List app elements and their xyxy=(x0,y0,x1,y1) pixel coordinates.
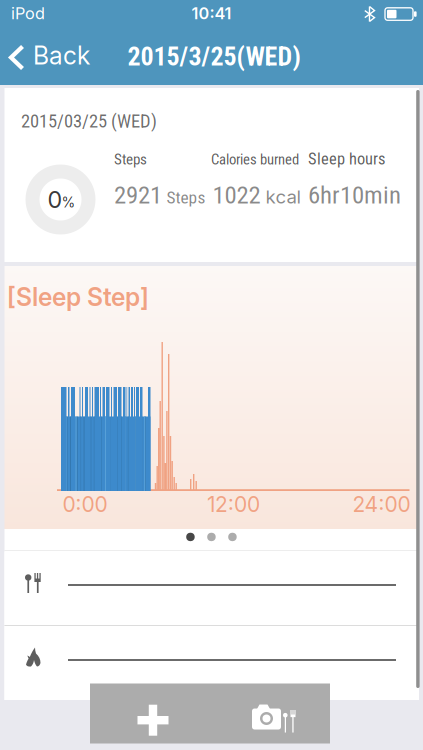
staticText: 6hr10min xyxy=(308,180,401,209)
staticText: 10:41 xyxy=(191,4,231,23)
button[interactable] xyxy=(4,551,419,625)
staticText: 12:00 xyxy=(207,492,260,517)
staticText: Back xyxy=(33,41,90,70)
button[interactable] xyxy=(4,626,419,700)
button[interactable] xyxy=(210,683,330,743)
staticText: Steps xyxy=(114,150,147,168)
staticText: 0:00 xyxy=(62,492,107,517)
staticText: 24:00 xyxy=(352,492,410,517)
staticText: % xyxy=(61,194,75,211)
staticText: [Sleep Step] xyxy=(7,282,149,312)
staticText: 0 xyxy=(47,185,62,214)
staticText: Steps xyxy=(166,187,205,208)
staticText: 1022 xyxy=(212,180,260,209)
staticText: 2015/03/25 (WED) xyxy=(21,110,157,132)
button[interactable]: Back xyxy=(0,0,100,85)
button[interactable] xyxy=(90,683,210,743)
staticText: iPod xyxy=(11,4,45,23)
staticText: Sleep hours xyxy=(308,149,385,168)
staticText: 2015/3/25(WED) xyxy=(127,41,300,72)
staticText: 2921 xyxy=(114,180,162,209)
staticText: Calories burned xyxy=(211,151,299,168)
staticText: kcal xyxy=(265,185,301,208)
